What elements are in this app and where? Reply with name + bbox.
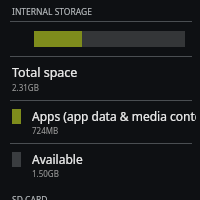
staticText: 724MB xyxy=(32,125,59,136)
staticText: 2.31GB xyxy=(12,82,39,93)
staticText: 1.50GB xyxy=(32,168,59,179)
button[interactable]: Available colour swatch xyxy=(0,144,200,186)
staticText: Apps (app data & media content) xyxy=(32,108,196,124)
staticText: SD CARD xyxy=(12,194,48,200)
staticText: INTERNAL STORAGE xyxy=(12,6,92,18)
staticText: Available xyxy=(32,151,83,167)
button[interactable]: Total space xyxy=(0,57,200,100)
button[interactable]: Apps (app data & media content) colour s… xyxy=(0,101,200,143)
staticText: Total space xyxy=(12,64,78,81)
